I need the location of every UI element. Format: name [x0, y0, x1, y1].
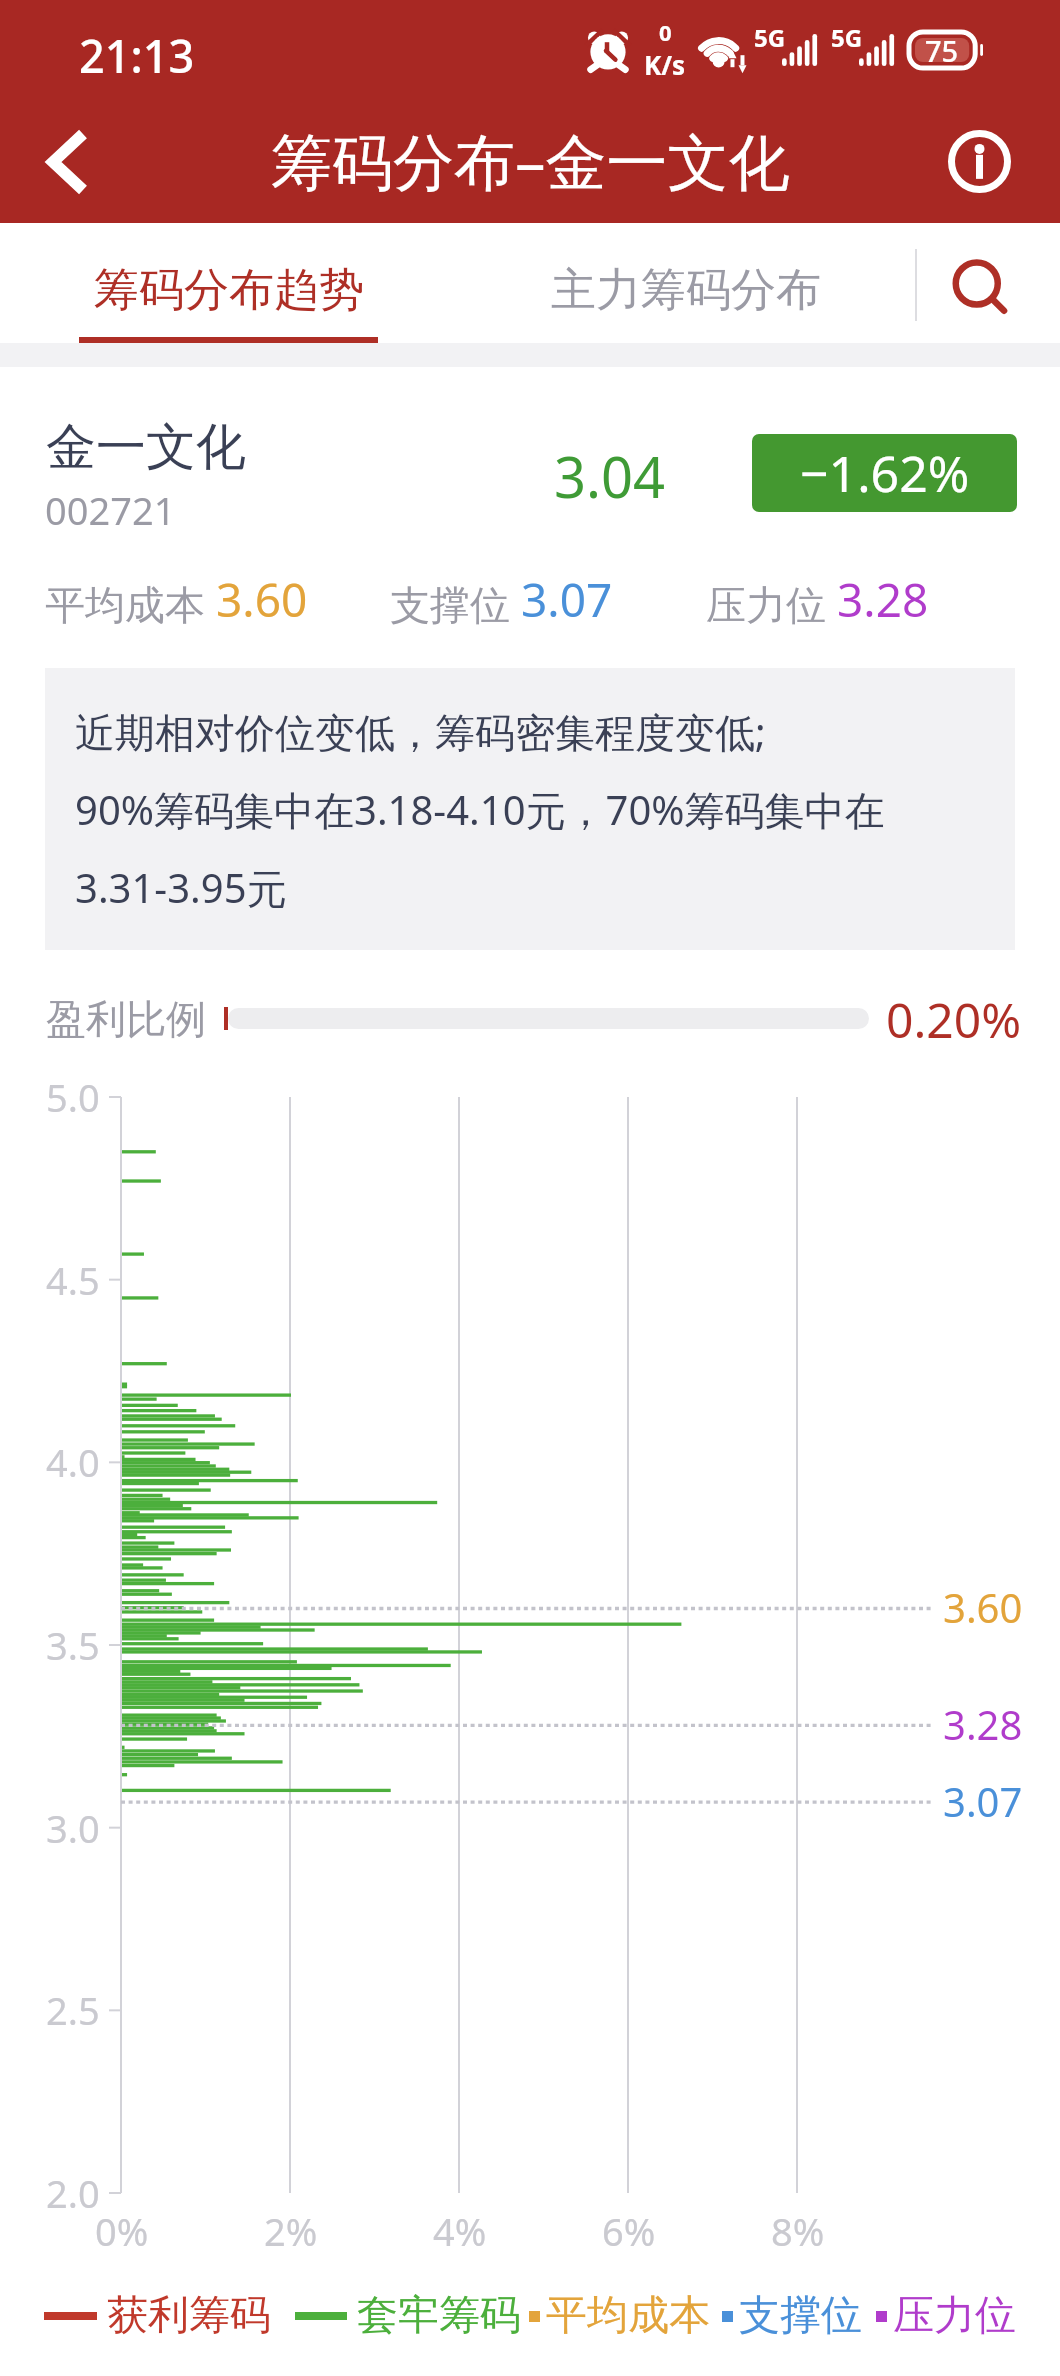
staticText: 3.28	[837, 568, 929, 631]
staticText: 支撑位	[739, 2290, 862, 2342]
button[interactable]: Search	[916, 223, 1060, 335]
button[interactable]: Back	[0, 100, 130, 223]
staticText: 支撑位	[390, 576, 521, 631]
staticText: 主力筹码分布	[551, 262, 821, 319]
staticText: 6%	[602, 2205, 656, 2257]
staticText: 2.5	[46, 1984, 100, 2036]
staticText: 金一文化	[46, 416, 246, 479]
button[interactable]: 主力筹码分布	[496, 223, 876, 343]
staticText: −1.62%	[800, 439, 970, 507]
staticText: 3.5	[46, 1619, 100, 1671]
staticText: 0.20%	[886, 987, 1022, 1052]
staticText: 3.07	[521, 568, 613, 631]
staticText: 3.31-3.95元	[75, 860, 287, 915]
staticText: 盈利比例	[46, 994, 206, 1044]
staticText: 75	[925, 31, 959, 70]
staticText: 5G	[754, 21, 786, 54]
staticText: 压力位	[706, 576, 837, 631]
staticText: 5G	[831, 21, 863, 54]
staticText: 0%	[95, 2205, 149, 2257]
staticText: 获利筹码	[107, 2290, 271, 2342]
button[interactable]: 获利筹码	[44, 2276, 1016, 2356]
staticText: 近期相对价位变低，筹码密集程度变低;	[75, 704, 766, 759]
staticText: 压力位	[893, 2290, 1016, 2342]
button[interactable]: 筹码分布趋势	[42, 223, 414, 343]
staticText: 筹码分布–金一文化	[271, 119, 790, 202]
staticText: 平均成本	[546, 2290, 710, 2342]
staticText: 21:13	[79, 25, 195, 86]
staticText: 3.04	[554, 438, 666, 514]
staticText: 筹码分布趋势	[94, 262, 364, 319]
staticText: 3.0	[46, 1802, 100, 1854]
staticText: 5.0	[46, 1071, 100, 1123]
button[interactable]: −1.62%	[752, 434, 1017, 512]
staticText: 3.07	[943, 1774, 1023, 1828]
staticText: 3.60	[943, 1580, 1023, 1634]
staticText: 4.5	[46, 1254, 100, 1306]
staticText: 套牢筹码	[357, 2290, 521, 2342]
staticText: 90%筹码集中在3.18-4.10元，70%筹码集中在	[75, 782, 885, 837]
staticText: 0	[659, 17, 672, 47]
staticText: K/s	[644, 47, 686, 82]
staticText: 002721	[45, 484, 176, 536]
staticText: 2%	[264, 2205, 318, 2257]
staticText: 4.0	[46, 1436, 100, 1488]
staticText: 平均成本	[45, 576, 216, 631]
staticText: 4%	[433, 2205, 487, 2257]
staticText: 2.0	[46, 2167, 100, 2219]
staticText: 8%	[771, 2205, 825, 2257]
staticText: 3.60	[216, 568, 308, 631]
staticText: 3.28	[943, 1697, 1023, 1751]
button[interactable]: Info	[930, 100, 1060, 223]
